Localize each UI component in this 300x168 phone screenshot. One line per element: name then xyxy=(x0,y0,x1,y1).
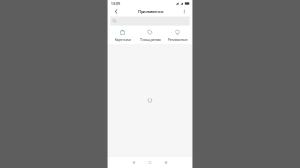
button[interactable]: Back xyxy=(126,157,142,168)
button[interactable]: Home xyxy=(142,157,158,168)
staticText: 13:09 xyxy=(111,1,120,6)
staticText: Поощрения xyxy=(139,37,160,42)
button[interactable]: More options xyxy=(179,7,189,16)
button[interactable]: Back xyxy=(111,7,122,16)
staticText: Карточки xyxy=(114,37,130,42)
button[interactable]: Recent apps xyxy=(158,157,174,168)
button[interactable]: Search xyxy=(110,16,190,26)
button[interactable]: Карточки xyxy=(109,26,136,44)
button[interactable]: Рекламные xyxy=(164,26,191,44)
button[interactable]: Поощрения xyxy=(136,26,164,44)
staticText: Приложения xyxy=(138,9,163,14)
staticText: Рекламные xyxy=(167,37,187,42)
